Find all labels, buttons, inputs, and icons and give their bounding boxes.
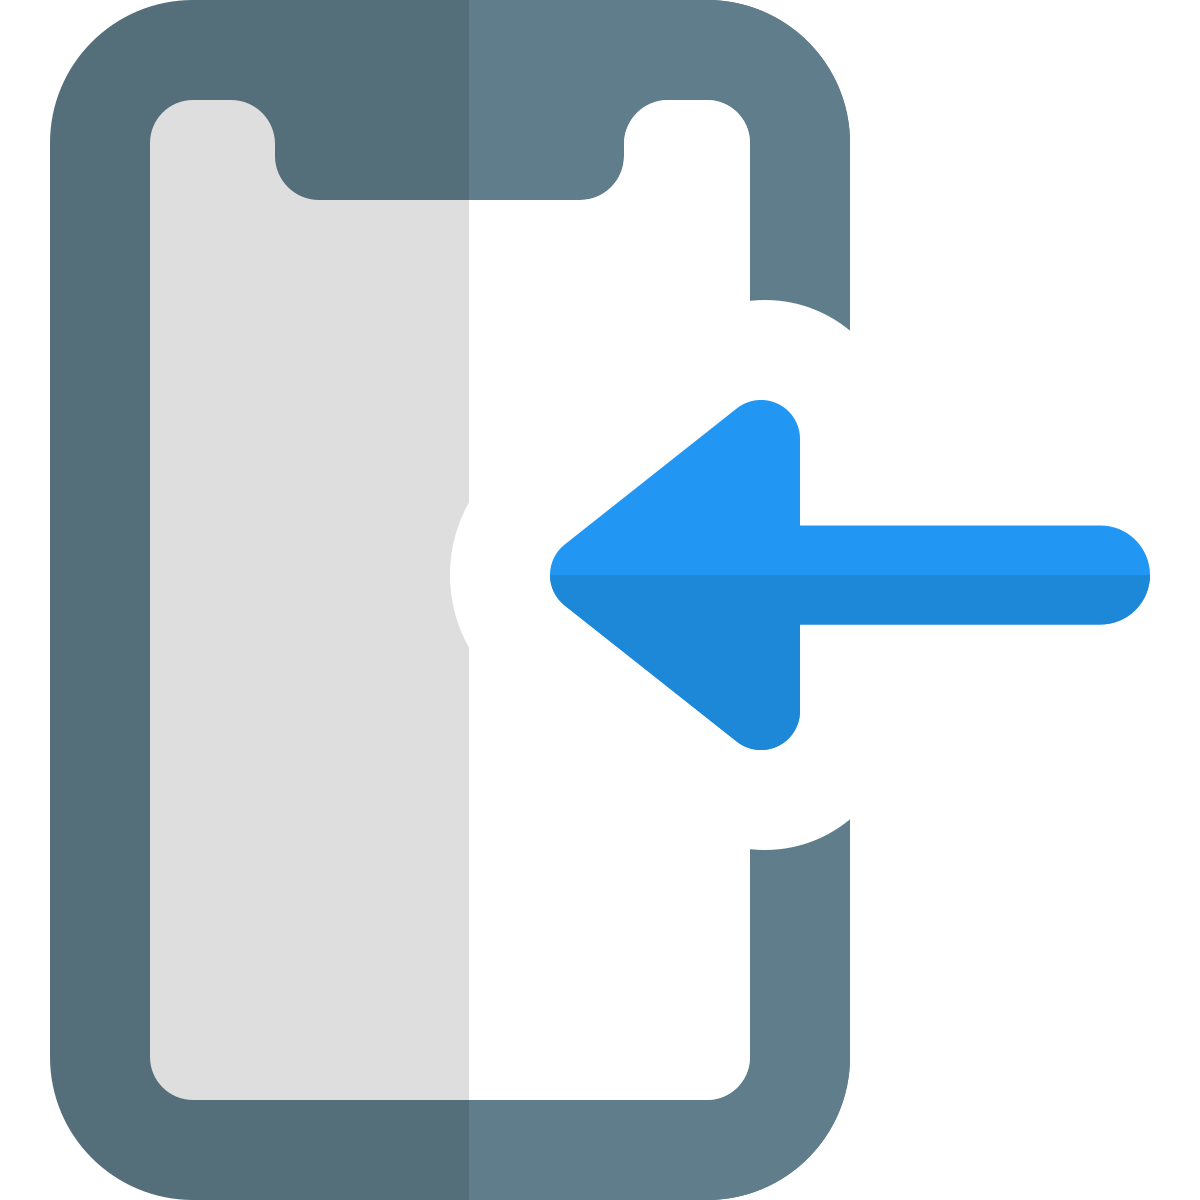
button[interactable]: Sign out of this device <box>0 0 1200 1200</box>
